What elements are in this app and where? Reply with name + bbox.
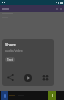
button[interactable]: App: [1, 91, 8, 100]
staticText: Text: [7, 58, 13, 62]
staticText: Share: [5, 42, 16, 47]
button[interactable]: Text: [5, 57, 15, 62]
button[interactable]: Play: [19, 72, 36, 83]
button[interactable]: App: [48, 91, 56, 100]
staticText: audio/video: [5, 49, 23, 53]
button[interactable]: More options: [36, 72, 54, 83]
button[interactable]: Share: [2, 72, 19, 83]
